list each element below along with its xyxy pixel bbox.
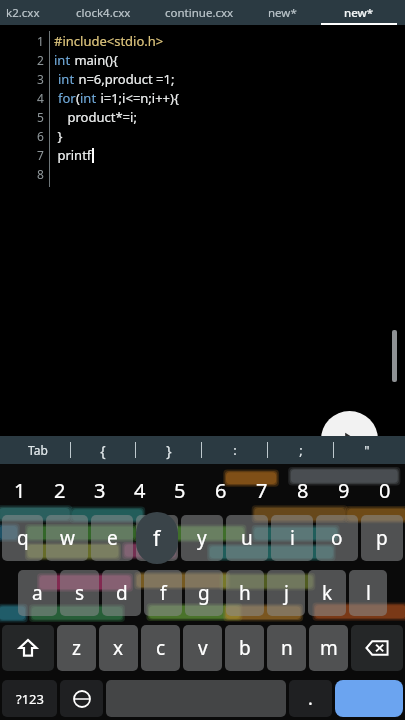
staticText: } [54,127,63,145]
button[interactable]: o [316,515,358,561]
button[interactable]: z [57,625,96,671]
staticText: c [156,635,166,661]
button[interactable]: w [46,515,88,561]
staticText: j [284,580,289,606]
staticText: q [17,525,29,551]
staticText: ( [76,89,80,107]
button[interactable]: 4 [120,468,160,512]
button[interactable]: g [185,570,223,616]
button[interactable]: 7 [241,468,282,512]
button[interactable]: y [181,515,223,561]
staticText: 8 [37,166,44,182]
button[interactable]: continue.cxx [148,0,251,25]
staticText: clock4.cxx [76,5,131,21]
staticText: 1 [37,33,44,49]
staticText: f [153,524,161,553]
button[interactable]: a [18,570,57,616]
button[interactable]: } [136,436,201,464]
button[interactable]: ; [268,436,333,464]
button[interactable]: k [308,570,346,616]
button[interactable]: l [349,570,387,616]
button[interactable]: Backspace [351,625,403,671]
staticText: 8 [297,477,309,504]
staticText: { [100,441,106,460]
staticText: ?123 [16,690,44,708]
staticText: 7 [256,477,268,504]
button[interactable]: 9 [323,468,364,512]
button[interactable]: u [226,515,268,561]
button[interactable]: { [71,436,135,464]
button[interactable]: 6 [200,468,241,512]
staticText: n [281,635,293,661]
staticText: . [308,686,313,711]
button[interactable]: Language [60,680,103,717]
button[interactable]: 2 [40,468,80,512]
staticText: 2 [54,477,66,504]
staticText: d [116,580,128,606]
staticText: s [75,580,85,606]
staticText: p [376,525,388,551]
staticText: 6 [215,477,227,504]
staticText: 2 [37,52,44,68]
button[interactable]: 0 [364,468,405,512]
staticText: o [331,525,343,551]
button[interactable]: m [309,625,348,671]
staticText: f [160,580,167,606]
button[interactable]: . [289,680,332,717]
button[interactable]: 5 [160,468,200,512]
button[interactable]: h [226,570,264,616]
staticText: i [290,525,295,551]
staticText: 0 [379,477,391,504]
button[interactable]: e [91,515,133,561]
button[interactable]: Tab [6,436,70,464]
staticText: product*=i; [54,108,137,126]
button[interactable]: f [144,570,182,616]
staticText: int [80,89,97,107]
button[interactable]: f [136,515,178,561]
button[interactable]: " [334,436,399,464]
staticText: 4 [37,90,44,106]
button[interactable]: Run [321,411,378,468]
staticText: b [239,635,251,661]
button[interactable]: new* [251,0,313,25]
button[interactable]: Enter [335,680,403,717]
button[interactable]: 8 [282,468,323,512]
staticText: " [364,441,370,459]
button[interactable]: p [361,515,403,561]
button[interactable]: c [141,625,180,671]
button[interactable]: x [99,625,138,671]
button[interactable]: v [183,625,222,671]
button[interactable]: Symbols [2,680,57,717]
button[interactable]: 3 [80,468,120,512]
button[interactable]: Space [106,680,286,717]
staticText: continue.cxx [165,5,234,21]
button[interactable]: k2.cxx [0,0,58,25]
button[interactable]: clock4.cxx [58,0,148,25]
staticText: int [58,70,75,88]
staticText: : [233,441,237,459]
button[interactable]: s [60,570,99,616]
button[interactable]: n [267,625,306,671]
staticText: 7 [37,147,44,163]
button[interactable]: new* [313,0,405,25]
staticText: f [154,525,161,551]
button[interactable]: b [225,625,264,671]
staticText: int [54,51,71,69]
staticText: Tab [28,442,48,458]
button[interactable]: : [202,436,267,464]
staticText: e [107,525,118,551]
staticText: new* [268,5,297,21]
button[interactable]: Shift [2,625,54,671]
staticText: #include<stdio.h> [54,32,164,50]
button[interactable]: q [2,515,43,561]
button[interactable]: 1 [0,468,40,512]
button[interactable]: d [102,570,141,616]
staticText: ; [299,441,303,459]
staticText: a [32,580,43,606]
button[interactable]: i [271,515,313,561]
button[interactable]: j [267,570,305,616]
staticText: 6 [37,128,44,144]
staticText: k2.cxx [6,5,40,21]
